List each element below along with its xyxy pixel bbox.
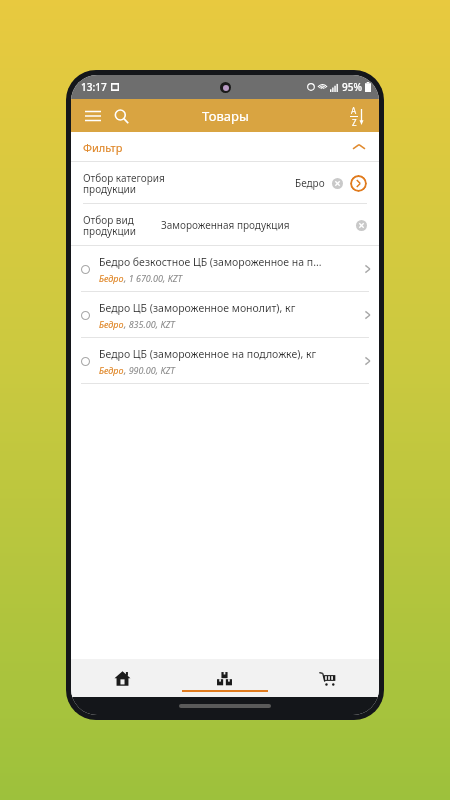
- staticText: , 1 670.00, KZT: [124, 272, 183, 284]
- button[interactable]: Home: [71, 659, 173, 697]
- staticText: Отбор вид продукции: [83, 213, 161, 238]
- button[interactable]: Open category: [350, 175, 367, 192]
- button[interactable]: Sort: [343, 102, 371, 130]
- button[interactable]: Фильтр: [71, 132, 379, 162]
- button[interactable]: Products: [173, 659, 276, 697]
- staticText: Отбор категория продукции: [83, 171, 295, 196]
- staticText: , 835.00, KZT: [124, 318, 175, 330]
- button[interactable]: Бедро ЦБ (замороженное монолит), кг: [71, 292, 379, 338]
- staticText: Бедро ЦБ (замороженное монолит), кг: [99, 301, 296, 315]
- staticText: Товары: [202, 107, 249, 125]
- button[interactable]: Search: [107, 102, 135, 130]
- button[interactable]: Menu: [79, 102, 107, 130]
- staticText: 95%: [342, 80, 362, 94]
- button[interactable]: Бедро безкостное ЦБ (замороженное на п…: [71, 246, 379, 292]
- staticText: Фильтр: [83, 140, 123, 155]
- staticText: Бедро безкостное ЦБ (замороженное на п…: [99, 255, 322, 269]
- staticText: Бедро: [99, 318, 124, 330]
- button[interactable]: Clear type: [356, 220, 367, 231]
- staticText: Бедро: [295, 176, 325, 190]
- button[interactable]: Отбор категория продукции: [71, 162, 379, 204]
- button[interactable]: Cart: [276, 659, 379, 697]
- button[interactable]: Бедро ЦБ (замороженное на подложке), кг: [71, 338, 379, 384]
- staticText: Бедро: [99, 272, 124, 284]
- button[interactable]: Отбор вид продукции: [71, 204, 379, 246]
- staticText: Z: [352, 117, 357, 128]
- button[interactable]: Clear category: [332, 178, 343, 189]
- staticText: , 990.00, KZT: [124, 364, 175, 376]
- staticText: 13:17: [81, 80, 107, 94]
- staticText: Замороженная продукция: [161, 218, 356, 232]
- staticText: A: [351, 105, 357, 116]
- staticText: Бедро: [99, 364, 124, 376]
- staticText: Бедро ЦБ (замороженное на подложке), кг: [99, 347, 317, 361]
